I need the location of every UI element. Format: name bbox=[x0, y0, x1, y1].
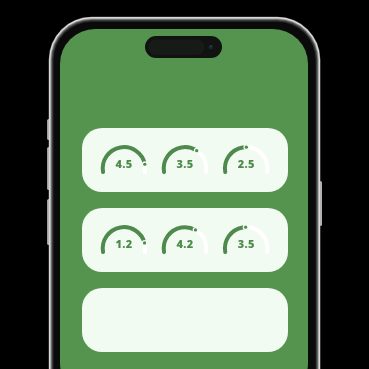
button[interactable] bbox=[82, 288, 288, 352]
button[interactable] bbox=[82, 208, 288, 272]
button[interactable] bbox=[82, 128, 288, 192]
other: Dynamic Island camera and sensors bbox=[145, 36, 222, 58]
